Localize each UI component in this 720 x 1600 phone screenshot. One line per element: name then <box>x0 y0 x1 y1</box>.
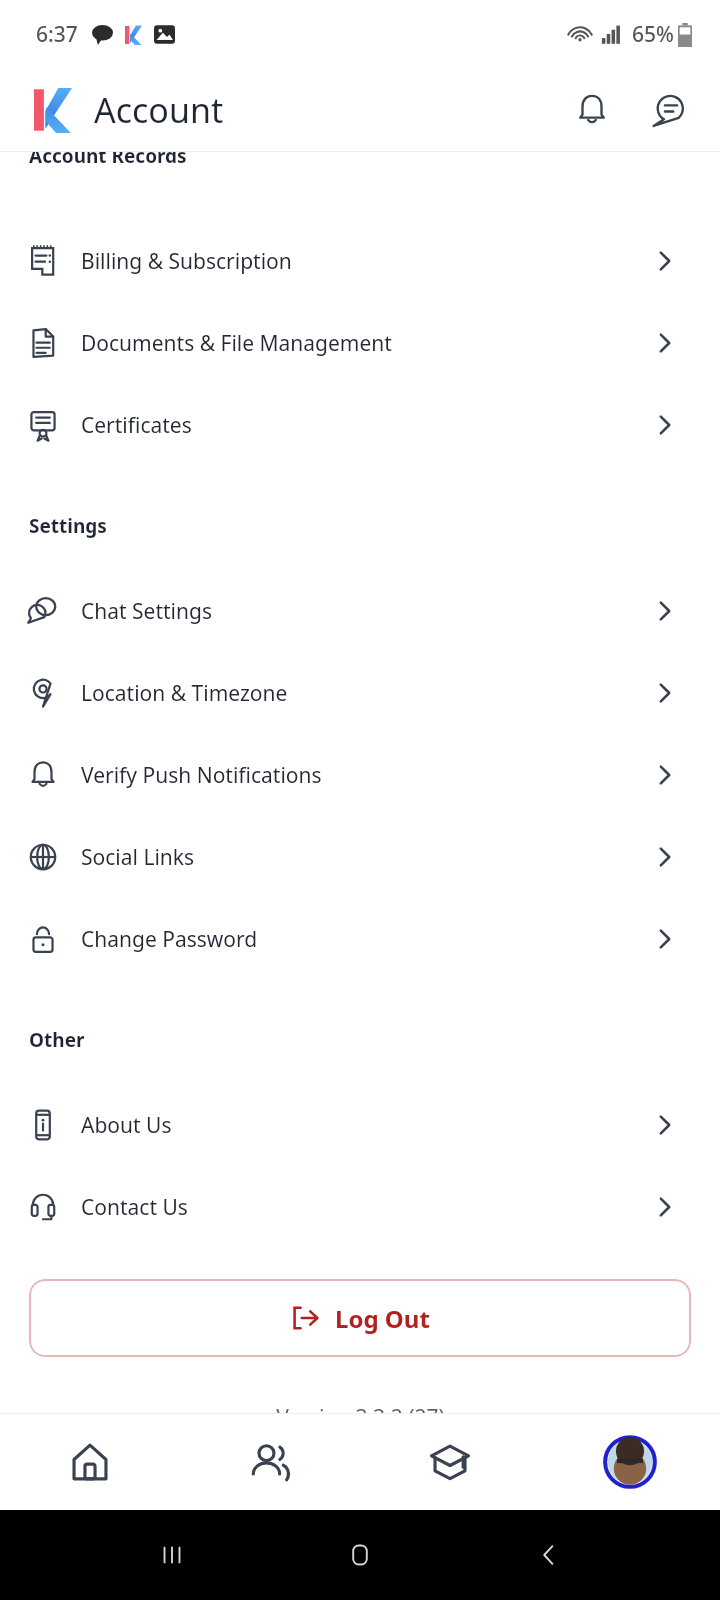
staticText: Log Out <box>335 1302 430 1335</box>
staticText: Documents & File Management <box>81 329 392 358</box>
staticText: 65% <box>632 20 674 49</box>
staticText: Social Links <box>81 843 195 872</box>
staticText: Account <box>94 87 224 133</box>
staticText: Chat Settings <box>81 597 212 626</box>
button[interactable]: Location & Timezone <box>0 652 720 734</box>
staticText: Version 3.3.2 (27) <box>276 1403 445 1413</box>
button[interactable]: Notifications <box>564 82 620 138</box>
staticText: Billing & Subscription <box>81 247 292 276</box>
staticText: Certificates <box>81 411 192 440</box>
staticText: Other <box>29 1027 85 1053</box>
button[interactable]: Documents & File Management <box>0 302 720 384</box>
staticText: 6:37 <box>36 20 78 49</box>
button[interactable]: Account <box>540 1413 720 1510</box>
staticText: Location & Timezone <box>81 679 288 708</box>
button[interactable]: About Us <box>0 1084 720 1166</box>
button[interactable]: Contact Us <box>0 1166 720 1248</box>
button[interactable]: Billing & Subscription <box>0 220 720 302</box>
button[interactable]: Change Password <box>0 898 720 980</box>
button[interactable]: Messages <box>640 82 696 138</box>
staticText: Settings <box>29 513 107 539</box>
button[interactable]: Social Links <box>0 816 720 898</box>
button[interactable]: Log Out <box>29 1279 691 1357</box>
button[interactable]: Certificates <box>0 384 720 466</box>
button[interactable]: Learning <box>360 1413 540 1510</box>
button[interactable]: Community <box>180 1413 360 1510</box>
staticText: About Us <box>81 1111 172 1140</box>
staticText: Verify Push Notifications <box>81 761 322 790</box>
staticText: Account Records <box>29 152 187 169</box>
button[interactable]: Chat Settings <box>0 570 720 652</box>
staticText: Change Password <box>81 925 258 954</box>
staticText: Contact Us <box>81 1193 188 1222</box>
button[interactable]: Home <box>0 1413 180 1510</box>
button[interactable]: Verify Push Notifications <box>0 734 720 816</box>
